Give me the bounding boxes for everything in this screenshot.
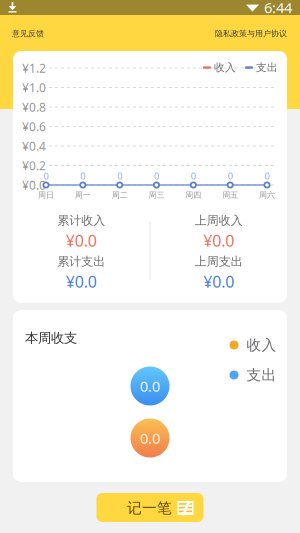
staticText: 支出 — [256, 61, 278, 74]
staticText: 0.0 — [140, 428, 160, 448]
staticText: ¥0.0 — [66, 230, 97, 251]
staticText: 收入 — [214, 61, 236, 74]
staticText: 0 — [80, 170, 85, 182]
staticText: 累计支出 — [57, 254, 105, 269]
staticText: 0 — [191, 170, 196, 182]
staticText: 记一笔 — [127, 499, 172, 517]
staticText: 0 — [154, 170, 159, 182]
staticText: 周六 — [259, 190, 275, 200]
button[interactable]: 意见反馈 — [0, 16, 54, 47]
staticText: ¥1.2 — [22, 60, 46, 76]
staticText: ¥0.6 — [22, 118, 46, 134]
staticText: ¥0.0 — [22, 177, 46, 193]
staticText: 6:44 — [264, 0, 292, 17]
staticText: 累计收入 — [57, 213, 105, 228]
button[interactable]: 记一笔 — [96, 493, 203, 522]
staticText: 0 — [43, 170, 48, 182]
staticText: ¥0.0 — [203, 271, 234, 292]
staticText: 0 — [117, 170, 122, 182]
staticText: 周四 — [185, 190, 201, 200]
staticText: 周五 — [222, 190, 238, 200]
staticText: 周一 — [75, 190, 91, 200]
staticText: ¥0.8 — [22, 99, 46, 115]
staticText: 支出 — [246, 366, 276, 384]
staticText: 周二 — [112, 190, 128, 200]
staticText: ¥0.0 — [203, 230, 234, 251]
staticText: 意见反馈 — [12, 29, 44, 38]
staticText: 0 — [264, 170, 269, 182]
staticText: 上周收入 — [195, 213, 243, 228]
staticText: 0 — [228, 170, 233, 182]
staticText: ¥1.0 — [22, 79, 46, 95]
staticText: 上周支出 — [195, 254, 243, 269]
staticText: ¥0.0 — [66, 271, 97, 292]
staticText: 收入 — [246, 336, 276, 354]
staticText: ¥0.4 — [22, 138, 46, 154]
staticText: 周三 — [148, 190, 164, 200]
staticText: 隐私政策与用户协议 — [215, 29, 287, 38]
staticText: 本周收支 — [25, 330, 77, 346]
staticText: 周日 — [38, 190, 54, 200]
button[interactable]: 隐私政策与用户协议 — [205, 16, 300, 47]
staticText: 0.0 — [140, 376, 160, 396]
staticText: ¥0.2 — [22, 157, 46, 173]
